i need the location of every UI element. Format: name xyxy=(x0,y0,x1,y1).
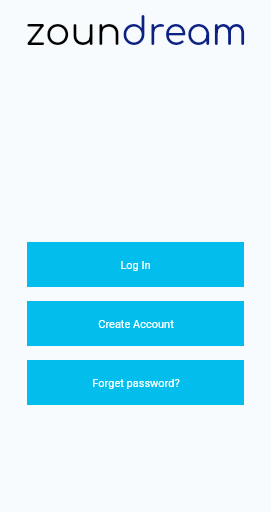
button[interactable]: zoundream xyxy=(0,0,271,70)
button[interactable]: Log In xyxy=(27,242,244,287)
button[interactable]: Forget password? xyxy=(27,360,244,405)
button[interactable]: Create Account xyxy=(27,301,244,346)
staticText: Forget password? xyxy=(92,377,180,390)
staticText: Log In xyxy=(120,259,151,272)
staticText: Create Account xyxy=(98,318,174,331)
